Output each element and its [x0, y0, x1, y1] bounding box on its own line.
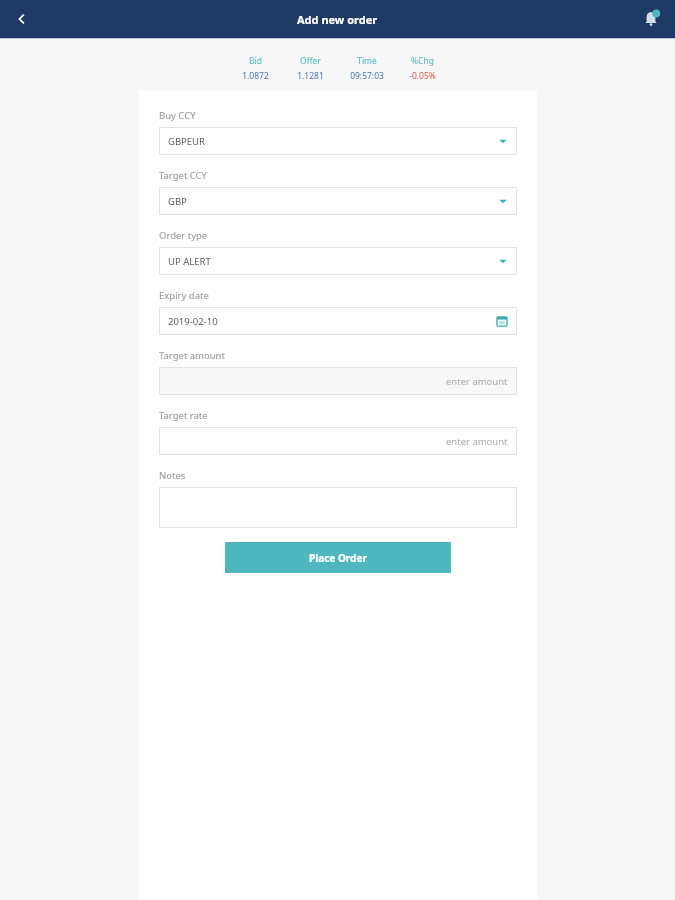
- button[interactable]: 2019-02-10: [159, 307, 517, 335]
- button[interactable]: enter amount: [159, 367, 517, 395]
- staticText: enter amount: [446, 435, 508, 448]
- button[interactable]: Back: [8, 5, 36, 33]
- staticText: GBP: [168, 195, 498, 208]
- staticText: Expiry date: [159, 289, 209, 302]
- button[interactable]: Place Order: [225, 542, 451, 573]
- staticText: Place Order: [309, 551, 367, 565]
- button[interactable]: GBPEUR: [159, 127, 517, 155]
- button[interactable]: UP ALERT: [159, 247, 517, 275]
- staticText: Time: [357, 55, 377, 67]
- staticText: 09:57:03: [350, 70, 384, 82]
- staticText: Target CCY: [159, 169, 207, 182]
- staticText: enter amount: [446, 375, 508, 388]
- staticText: GBPEUR: [168, 135, 498, 148]
- staticText: Offer: [300, 55, 321, 67]
- button[interactable]: enter amount: [159, 427, 517, 455]
- staticText: Bid: [249, 55, 262, 67]
- staticText: Add new order: [297, 12, 378, 27]
- staticText: -0.05%: [409, 70, 436, 82]
- staticText: 2019-02-10: [168, 315, 496, 328]
- staticText: Target amount: [159, 349, 225, 362]
- staticText: Order type: [159, 229, 208, 242]
- staticText: Target rate: [159, 409, 208, 422]
- staticText: 1.1281: [297, 70, 324, 82]
- staticText: 1.0872: [242, 70, 269, 82]
- button[interactable]: [159, 487, 517, 528]
- staticText: Buy CCY: [159, 109, 196, 122]
- staticText: Notes: [159, 469, 186, 482]
- button[interactable]: Notifications: [637, 5, 665, 33]
- staticText: UP ALERT: [168, 255, 498, 268]
- staticText: %Chg: [411, 55, 434, 67]
- button[interactable]: GBP: [159, 187, 517, 215]
